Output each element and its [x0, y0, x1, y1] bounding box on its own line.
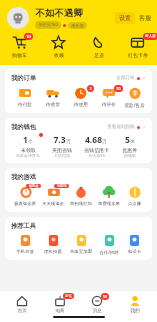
- staticText: 免费领水果: [95, 201, 123, 207]
- staticText: 充电宝加盟: [67, 249, 95, 255]
- staticText: 消息: [92, 308, 102, 314]
- staticText: 我的游戏: [11, 173, 36, 181]
- staticText: 设置: [119, 14, 131, 22]
- staticText: 省钱信用卡: [84, 147, 109, 153]
- staticText: 我的: [130, 308, 140, 314]
- button[interactable]: 7.3: [45, 134, 79, 158]
- staticText: 张: [130, 139, 135, 145]
- button[interactable]: 电话卡: [123, 234, 146, 255]
- staticText: 优惠券: [122, 147, 137, 153]
- button[interactable]: 点点赚: [123, 185, 146, 207]
- button[interactable]: 设置: [115, 12, 135, 24]
- staticText: 50: [116, 86, 121, 91]
- staticText: 大约可得: [54, 153, 70, 158]
- staticText: 个: [28, 139, 33, 145]
- staticText: 我的钱包: [11, 123, 36, 131]
- button[interactable]: 5: [113, 134, 146, 158]
- staticText: 客服: [139, 14, 151, 22]
- staticText: 我的订单: [11, 74, 36, 82]
- staticText: 1: [23, 134, 28, 146]
- staticText: 万: [66, 139, 71, 145]
- staticText: 万: [102, 139, 107, 145]
- staticText: 推荐工具: [11, 222, 36, 230]
- button[interactable]: 我的: [119, 295, 151, 314]
- button[interactable]: 50: [95, 86, 123, 108]
- staticText: 首页: [17, 308, 27, 314]
- staticText: 10: [26, 34, 31, 39]
- staticText: 待收货: [46, 102, 60, 108]
- button[interactable]: 手机充值: [11, 234, 39, 255]
- staticText: 领现金: [28, 184, 39, 188]
- staticText: 5: [125, 134, 130, 146]
- staticText: 合作/招聘: [95, 249, 123, 255]
- button[interactable]: 首页: [6, 295, 38, 314]
- button[interactable]: 退款/售后: [123, 86, 146, 108]
- staticText: 不如不遇卿: [35, 7, 83, 19]
- staticText: 团长招募: [39, 249, 67, 255]
- button[interactable]: 4.68: [79, 134, 113, 158]
- staticText: 可提现: [56, 184, 67, 188]
- staticText: 购物车: [12, 52, 27, 58]
- button[interactable]: 团长招募: [39, 234, 67, 255]
- staticText: 天天减¥8: [88, 153, 105, 158]
- staticText: 美团省钱: [52, 147, 72, 153]
- staticText: 7.3: [53, 134, 66, 146]
- staticText: 待评价: [102, 102, 116, 108]
- staticText: 新人券: [145, 34, 156, 39]
- button[interactable]: 领现金: [11, 185, 39, 207]
- staticText: 收藏: [54, 52, 64, 58]
- button[interactable]: 签到领红包: [67, 185, 95, 207]
- staticText: 点点赚: [123, 201, 146, 207]
- staticText: 无本金还首礼: [16, 153, 40, 158]
- staticText: 待付款: [18, 102, 32, 108]
- staticText: 99: [103, 294, 107, 299]
- staticText: 手机充值: [11, 249, 39, 255]
- button[interactable]: 我的订单: [11, 74, 146, 82]
- button[interactable]: Avatar: [7, 7, 29, 29]
- button[interactable]: 可提现: [39, 185, 67, 207]
- button[interactable]: 合作/招聘: [95, 234, 123, 255]
- staticText: 全部订单: [116, 75, 135, 81]
- button[interactable]: 充电宝加盟: [67, 234, 95, 255]
- button[interactable]: 不如不遇卿: [35, 7, 115, 29]
- staticText: 信任分760: [38, 22, 58, 28]
- button[interactable]: 收藏: [39, 33, 78, 60]
- button[interactable]: 百亿: [44, 295, 76, 314]
- staticText: 3: [89, 86, 92, 91]
- staticText: 待领取: [124, 153, 136, 158]
- staticText: 百亿: [65, 294, 72, 298]
- staticText: 签到领红包: [67, 201, 95, 207]
- button[interactable]: 新人券: [118, 33, 157, 60]
- staticText: 天天领现金: [39, 201, 67, 207]
- button[interactable]: 客服: [138, 13, 152, 23]
- button[interactable]: 1: [11, 134, 45, 158]
- staticText: 电商: [55, 308, 65, 314]
- staticText: 极速现金赛: [11, 201, 39, 207]
- button[interactable]: 10: [0, 33, 39, 60]
- staticText: 4.68: [85, 134, 102, 146]
- staticText: 退款/售后: [124, 102, 145, 108]
- staticText: 红包卡券: [128, 52, 148, 58]
- button[interactable]: 待付款: [11, 86, 39, 108]
- staticText: 待使用: [74, 102, 88, 108]
- button[interactable]: 足迹: [79, 33, 118, 60]
- button[interactable]: 免费领水果: [95, 185, 123, 207]
- staticText: 成长值: [71, 23, 84, 28]
- button[interactable]: 3: [67, 86, 95, 108]
- staticText: 电话卡: [123, 249, 146, 255]
- button[interactable]: 待收货: [39, 86, 67, 108]
- staticText: 查看返利到账: [107, 124, 135, 130]
- button[interactable]: 我的钱包: [11, 123, 146, 131]
- button[interactable]: 99: [81, 295, 113, 314]
- staticText: 未领取: [21, 147, 36, 153]
- staticText: 足迹: [94, 52, 104, 58]
